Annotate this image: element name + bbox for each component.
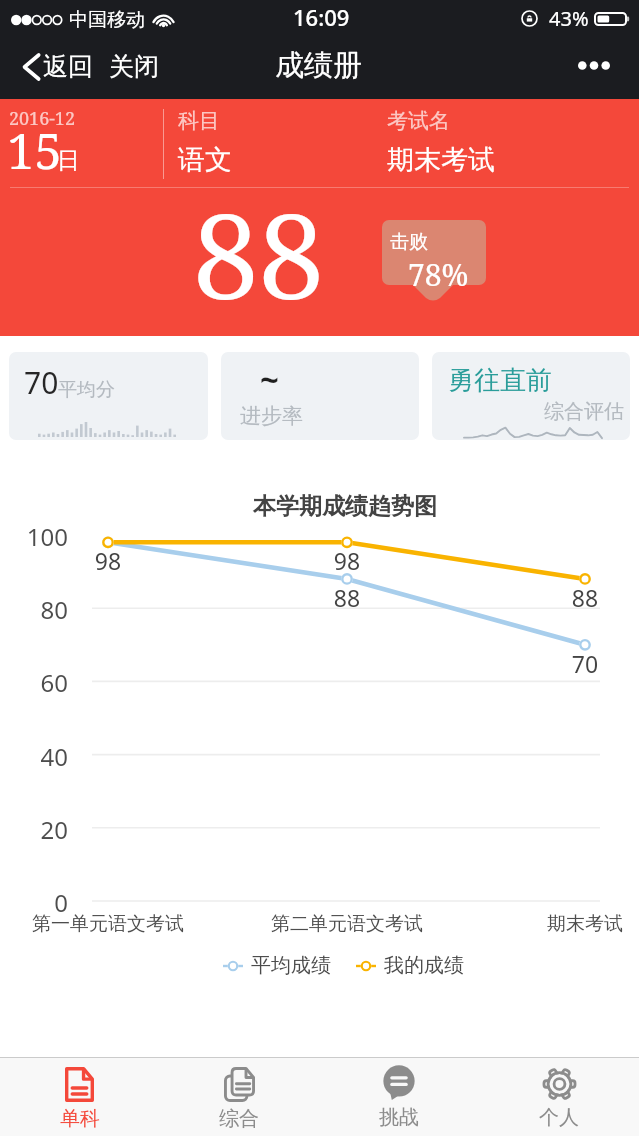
button[interactable]: 平均成绩: [223, 953, 331, 978]
button[interactable]: ~: [221, 352, 419, 440]
staticText: ~: [260, 357, 279, 402]
button[interactable]: 个人: [479, 1058, 639, 1136]
button[interactable]: 挑战: [319, 1058, 479, 1136]
staticText: 科目: [178, 108, 220, 134]
staticText: 98: [317, 545, 377, 576]
button[interactable]: 关闭: [107, 43, 161, 90]
staticText: 100: [0, 520, 68, 553]
staticText: 60: [0, 666, 68, 699]
staticText: 20: [0, 813, 68, 846]
staticText: 期末考试: [475, 912, 639, 936]
button[interactable]: 我的成绩: [356, 953, 464, 978]
staticText: 88: [317, 582, 377, 613]
staticText: 平均分: [58, 378, 115, 402]
staticText: 语文: [178, 143, 232, 177]
staticText: 本学期成绩趋势图: [253, 492, 437, 521]
staticText: 综合: [219, 1106, 259, 1131]
staticText: 88: [193, 174, 324, 333]
button[interactable]: 综合: [159, 1058, 319, 1136]
staticText: 16:09: [293, 2, 350, 32]
staticText: 98: [78, 545, 138, 576]
staticText: 70: [555, 648, 615, 679]
staticText: 进步率: [240, 403, 303, 429]
staticText: 单科: [60, 1106, 100, 1131]
staticText: 15: [7, 117, 62, 184]
staticText: 第一单元语文考试: [0, 912, 218, 936]
button[interactable]: 返回: [22, 51, 99, 82]
button[interactable]: More options: [560, 49, 639, 90]
staticText: 期末考试: [387, 143, 495, 177]
staticText: 70: [24, 362, 59, 403]
staticText: 第二单元语文考试: [237, 912, 457, 936]
staticText: 0: [0, 886, 68, 919]
button[interactable]: 勇往直前: [432, 352, 630, 440]
staticText: 勇往直前: [448, 364, 552, 397]
staticText: 2016-12: [9, 106, 75, 131]
staticText: 返回: [43, 51, 93, 82]
button[interactable]: 单科: [0, 1058, 159, 1136]
staticText: 78%: [408, 254, 469, 295]
staticText: 成绩册: [275, 47, 362, 84]
button[interactable]: 70: [9, 352, 208, 440]
staticText: 考试名: [387, 108, 450, 134]
staticText: 43%: [549, 5, 589, 32]
staticText: 40: [0, 740, 68, 773]
staticText: 综合评估: [544, 399, 624, 424]
staticText: 击败: [390, 230, 428, 254]
staticText: 88: [555, 582, 615, 613]
staticText: 日: [57, 146, 80, 175]
staticText: 80: [0, 593, 68, 626]
staticText: 中国移动: [69, 8, 145, 32]
staticText: 挑战: [379, 1105, 419, 1130]
staticText: 平均成绩: [251, 953, 331, 978]
staticText: 个人: [539, 1105, 579, 1130]
staticText: 我的成绩: [384, 953, 464, 978]
